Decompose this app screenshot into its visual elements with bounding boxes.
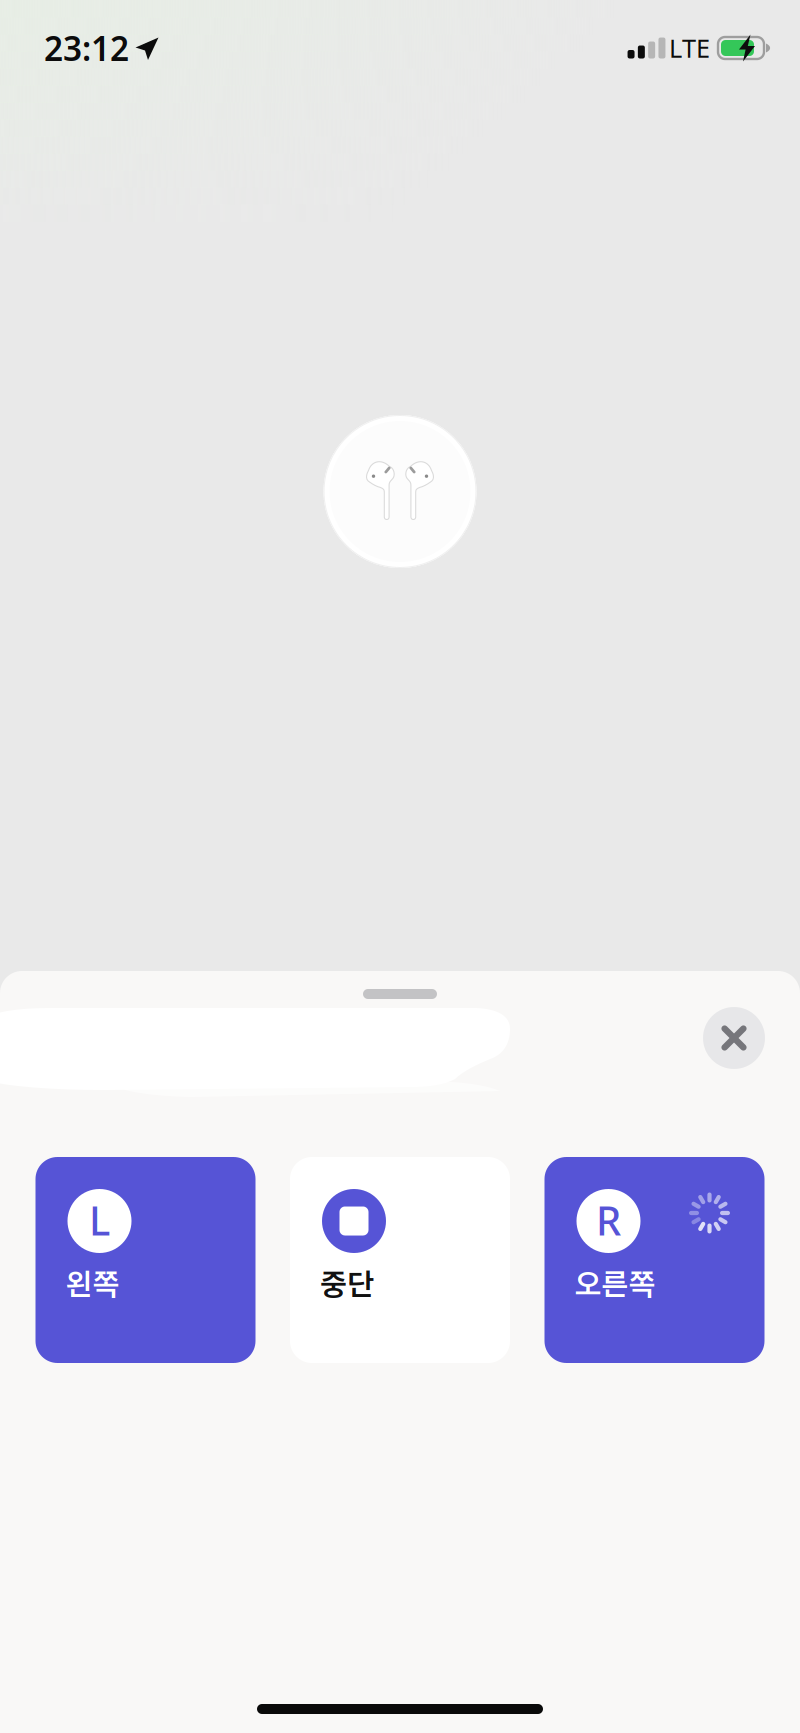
staticText: R — [596, 1193, 621, 1246]
button[interactable]: 중단 — [290, 1157, 510, 1363]
staticText: 오른쪽 — [574, 1261, 655, 1303]
staticText: 왼쪽 — [65, 1261, 119, 1303]
staticText: LTE — [669, 31, 710, 65]
staticText: 23:12 — [44, 26, 129, 70]
button[interactable]: 왼쪽 — [35, 1157, 255, 1363]
button[interactable]: 오른쪽 — [544, 1157, 764, 1363]
button[interactable]: Close — [703, 1007, 765, 1069]
staticText: L — [89, 1193, 110, 1246]
staticText: 중단 — [320, 1261, 374, 1303]
